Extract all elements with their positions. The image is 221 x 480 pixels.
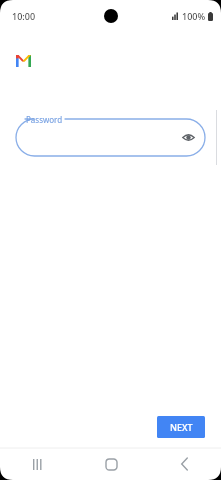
other: Show password — [182, 131, 195, 144]
button[interactable]: Home — [95, 448, 127, 480]
staticText: Password — [26, 114, 63, 125]
button[interactable]: Password — [16, 119, 205, 156]
button[interactable]: NEXT — [157, 416, 205, 438]
button[interactable]: Recents — [21, 448, 53, 480]
button[interactable]: Back — [168, 448, 200, 480]
staticText: 100% — [182, 10, 206, 22]
staticText: NEXT — [170, 421, 193, 433]
staticText: 10:00 — [12, 10, 36, 22]
